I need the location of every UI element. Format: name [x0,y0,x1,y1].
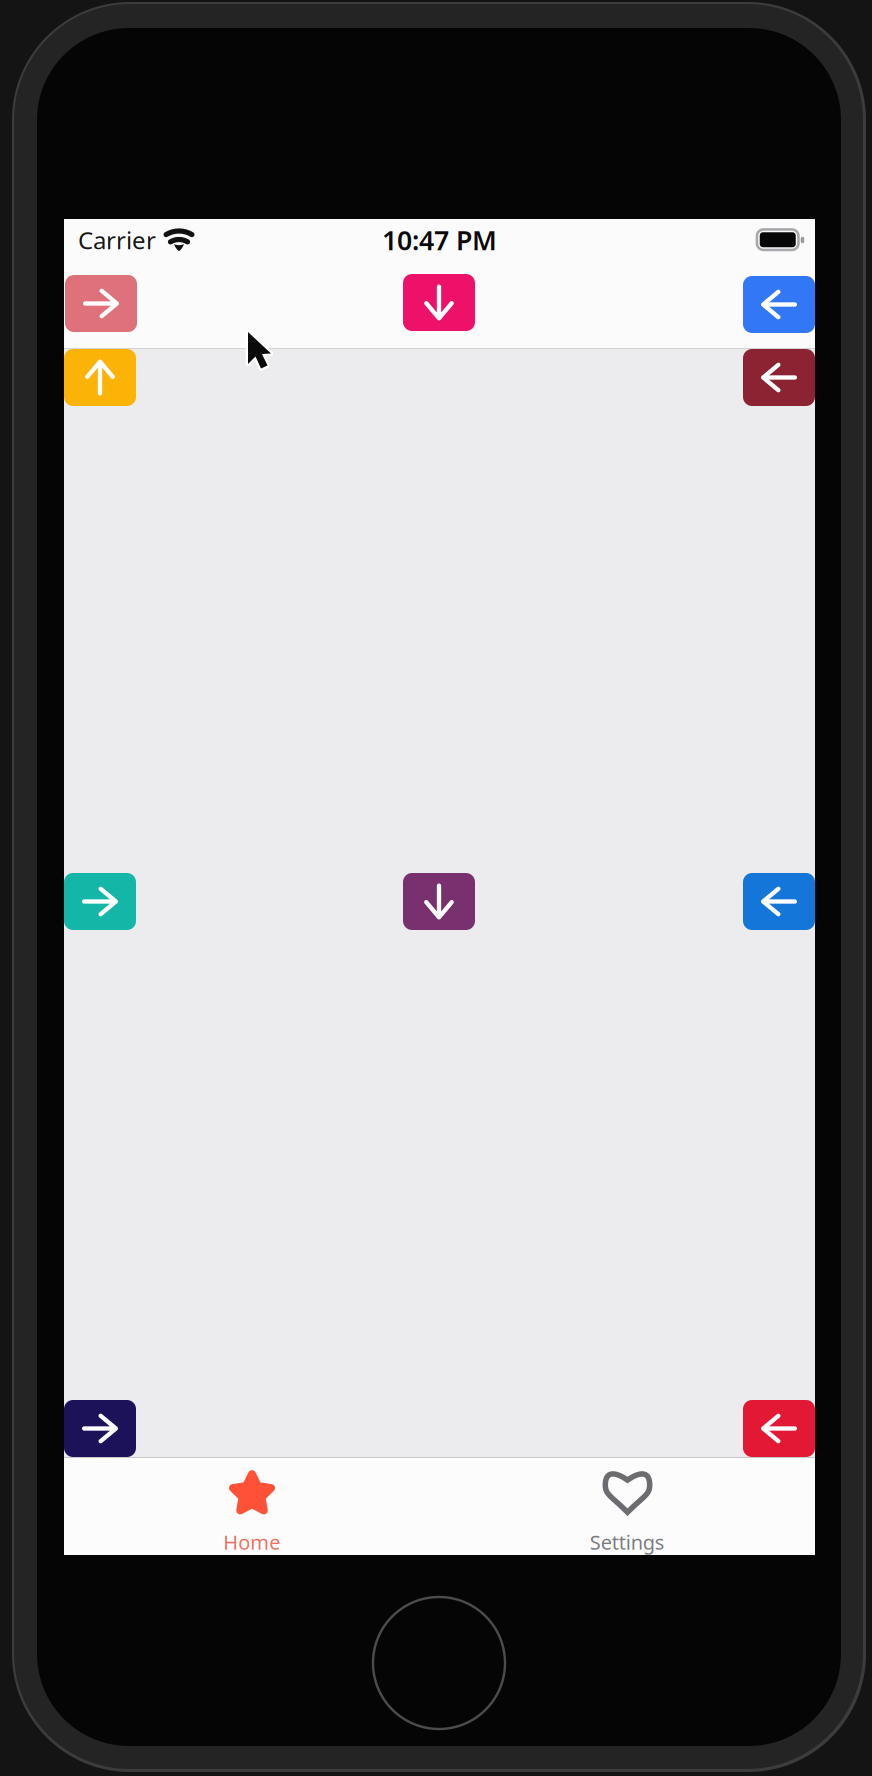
button[interactable]: Move left [743,276,815,333]
staticText: Carrier [78,224,156,256]
button[interactable]: Move right [64,1400,136,1457]
staticText: 10:47 PM [382,222,497,258]
button[interactable]: Move down [403,274,475,331]
staticText: Settings [590,1529,665,1555]
button[interactable]: Move left [743,1400,815,1457]
button[interactable]: Move right [64,873,136,930]
button[interactable]: Settings [439,1458,815,1555]
staticText: Home [223,1529,280,1555]
button[interactable]: Move left [743,349,815,406]
button[interactable]: Move left [743,873,815,930]
button[interactable]: Move down [403,873,475,930]
button[interactable]: Home [64,1458,439,1555]
button[interactable]: Move up [64,349,136,406]
button[interactable]: Move right [65,275,137,332]
